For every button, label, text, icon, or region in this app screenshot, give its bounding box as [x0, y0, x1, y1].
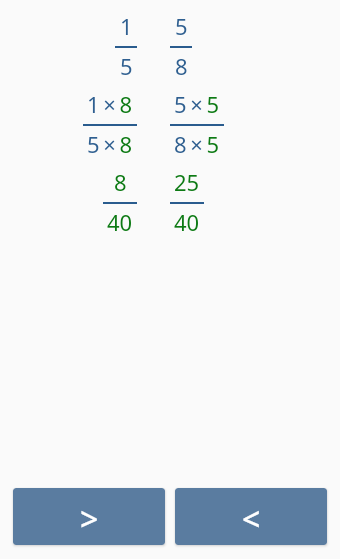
button[interactable]: Greater than — [13, 488, 165, 545]
staticText: 5 × 8 — [87, 129, 133, 159]
staticText: 40 — [174, 207, 200, 237]
staticText: 8 × 5 — [174, 129, 220, 159]
staticText: < — [242, 497, 261, 541]
staticText: 1 — [120, 11, 133, 41]
staticText: 5 — [120, 51, 133, 81]
staticText: 5 — [175, 11, 188, 41]
staticText: 1 × 8 — [87, 89, 133, 119]
staticText: > — [80, 497, 99, 541]
staticText: 25 — [174, 167, 200, 197]
staticText: 5 × 5 — [174, 89, 220, 119]
staticText: 40 — [107, 207, 133, 237]
button[interactable]: Less than — [175, 488, 327, 545]
staticText: 8 — [175, 51, 188, 81]
staticText: 8 — [114, 167, 127, 197]
